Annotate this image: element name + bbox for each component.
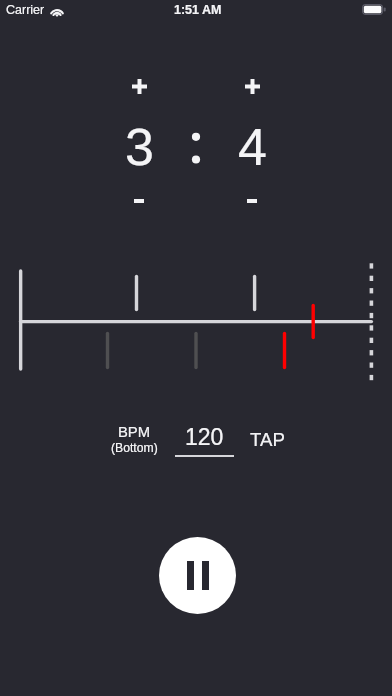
button[interactable]: Increase beats — [119, 71, 159, 101]
staticText: 1:51 AM — [174, 3, 222, 17]
staticText: 120 — [185, 424, 224, 450]
staticText: 4 — [238, 118, 267, 176]
button[interactable]: Pause — [159, 537, 236, 614]
staticText: TAP — [250, 429, 285, 450]
button[interactable]: Decrease note value — [232, 187, 272, 215]
staticText: (Bottom) — [111, 441, 158, 455]
button[interactable]: TAP — [250, 429, 285, 450]
staticText: Carrier — [6, 3, 45, 17]
button[interactable]: Decrease beats — [119, 187, 159, 215]
staticText: BPM — [118, 424, 151, 441]
button[interactable]: Increase note value — [232, 71, 272, 101]
staticText: 3 — [125, 118, 154, 176]
button[interactable]: 120 — [175, 422, 234, 457]
